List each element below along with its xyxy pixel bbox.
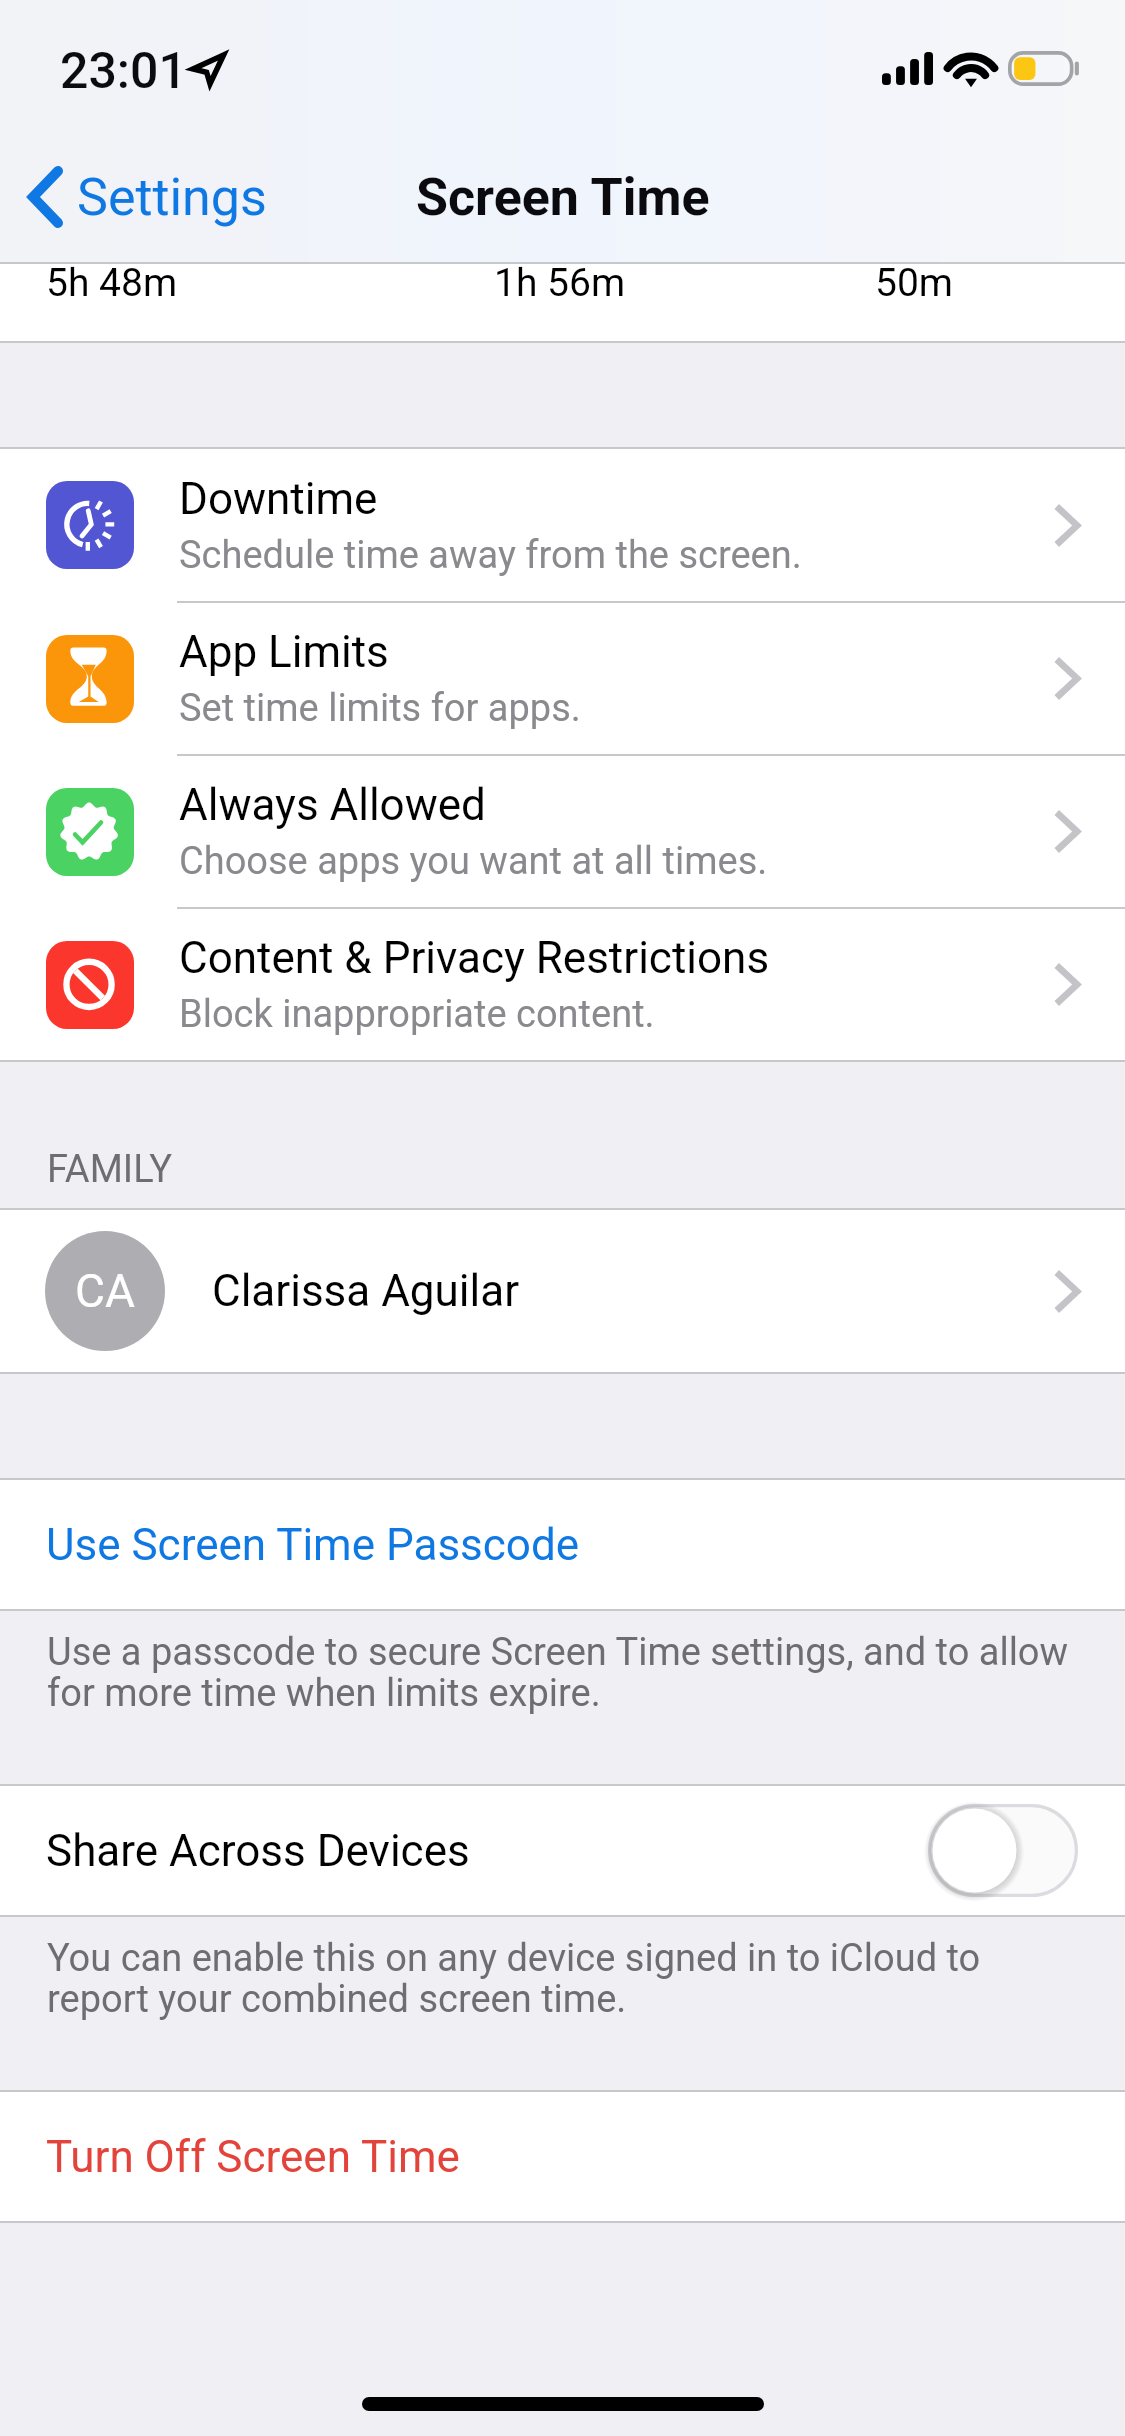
staticText: 5h 48m (46, 264, 178, 306)
button[interactable]: Always Allowed (0, 756, 1125, 907)
staticText: Block inappropriate content. (179, 992, 655, 1037)
staticText: Use a passcode to secure Screen Time set… (47, 1630, 1075, 1716)
staticText: Choose apps you want at all times. (179, 839, 768, 884)
button[interactable]: Content & Privacy Restrictions (0, 909, 1125, 1060)
button[interactable]: App Limits (0, 603, 1125, 754)
staticText: 23:01 (60, 42, 187, 101)
staticText: 1h 56m (494, 264, 626, 306)
staticText: Use Screen Time Passcode (46, 1519, 580, 1571)
button[interactable]: Settings (0, 154, 287, 240)
staticText: App Limits (179, 626, 389, 678)
staticText: 50m (875, 264, 954, 306)
button[interactable]: Turn Off Screen Time (0, 2092, 1125, 2221)
staticText: Screen Time (416, 167, 710, 228)
staticText: Settings (77, 167, 267, 228)
staticText: You can enable this on any device signed… (47, 1936, 1075, 2022)
staticText: Clarissa Aguilar (212, 1265, 1056, 1317)
staticText: Content & Privacy Restrictions (179, 932, 770, 984)
staticText: CA (75, 1264, 135, 1318)
button[interactable]: Use Screen Time Passcode (0, 1480, 1125, 1609)
button[interactable]: Downtime (0, 449, 1125, 601)
staticText: Set time limits for apps. (179, 686, 581, 731)
staticText: Schedule time away from the screen. (179, 533, 802, 578)
staticText: FAMILY (47, 1147, 173, 1192)
staticText: Always Allowed (179, 779, 486, 831)
staticText: Share Across Devices (46, 1825, 928, 1877)
button[interactable]: Share Across Devices (0, 1786, 1125, 1915)
staticText: Downtime (179, 473, 378, 525)
button[interactable]: CA (0, 1210, 1125, 1372)
staticText: Turn Off Screen Time (46, 2131, 460, 2183)
